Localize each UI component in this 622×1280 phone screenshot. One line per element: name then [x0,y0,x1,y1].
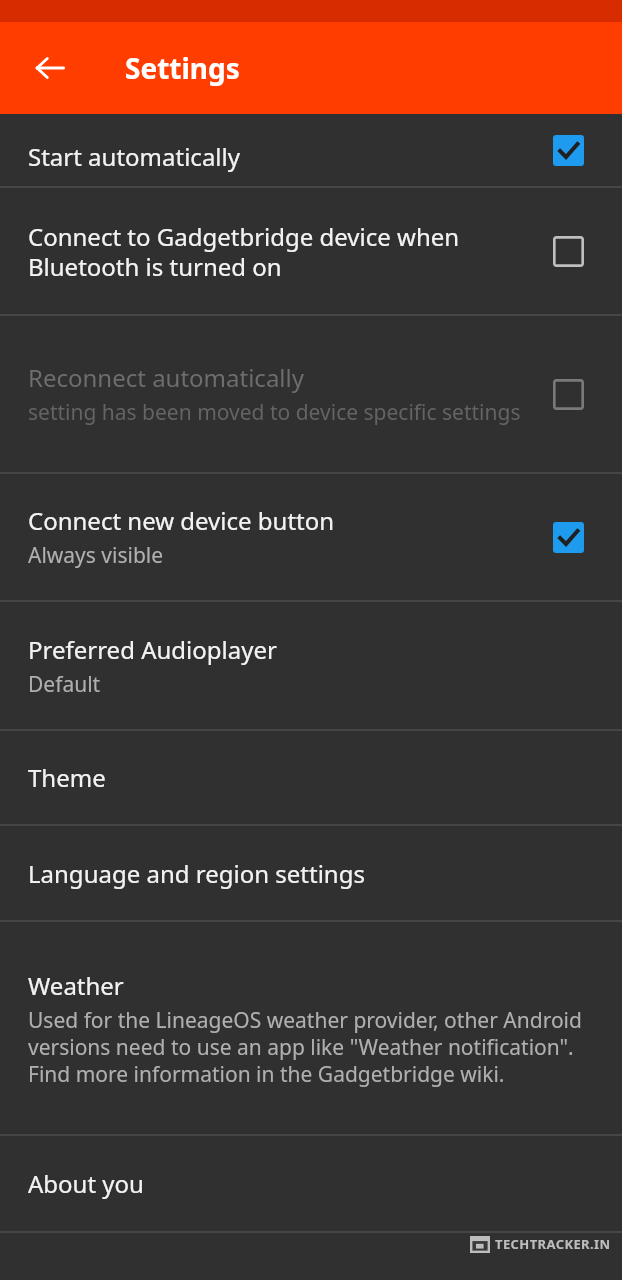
staticText: Default [28,670,101,699]
button[interactable]: Preferred Audioplayer [0,602,622,729]
staticText: Always visible [28,541,164,570]
staticText: Settings [125,49,240,87]
button[interactable]: Connect to Gadgetbridge device when Blue… [0,188,622,314]
staticText: Connect to Gadgetbridge device when Blue… [28,220,526,283]
staticText: Preferred Audioplayer [28,633,277,666]
button[interactable]: Reconnect automatically [542,368,594,420]
button[interactable]: Chart settings [0,1233,622,1280]
staticText: Theme [28,761,106,794]
staticText: Reconnect automatically [28,361,304,394]
staticText: Weather [28,969,124,1002]
button[interactable]: About you [0,1136,622,1231]
button[interactable]: Reconnect automatically [0,316,622,472]
staticText: Start automatically [28,140,240,173]
button[interactable]: Connect to Gadgetbridge device when Blue… [542,225,594,277]
button[interactable]: Connect new device button [542,511,594,563]
button[interactable]: Back [22,40,78,96]
button[interactable]: Start automatically [0,114,622,186]
staticText: About you [28,1167,144,1200]
staticText: TECHTRACKER.IN [495,1235,611,1253]
staticText: Connect new device button [28,504,335,537]
staticText: Language and region settings [28,857,365,890]
staticText: Used for the LineageOS weather provider,… [28,1006,606,1088]
button[interactable]: Connect new device button [0,474,622,600]
button[interactable]: Theme [0,731,622,824]
staticText: setting has been moved to device specifi… [28,398,521,427]
button[interactable]: Weather [0,922,622,1134]
button[interactable]: Language and region settings [0,826,622,920]
button[interactable]: Start automatically [542,124,594,176]
